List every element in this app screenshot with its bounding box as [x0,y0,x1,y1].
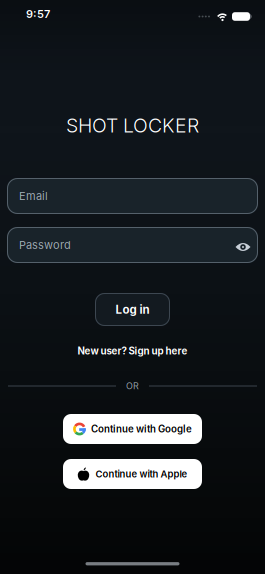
staticText: Continue with Apple [95,468,187,480]
button[interactable]: Email [0,178,265,214]
staticText: Log in [115,302,149,316]
staticText: New user? Sign up here [77,345,187,357]
staticText: Email [19,189,48,203]
button[interactable]: Continue with Google [63,414,202,444]
staticText: Continue with Google [91,423,192,435]
staticText: 9:57 [26,7,50,21]
staticText: OR [126,381,139,391]
button[interactable]: New user? Sign up here [77,345,187,357]
staticText: Password [19,238,71,252]
staticText: SHOT LOCKER [66,114,199,137]
button[interactable]: Password [0,227,265,263]
button[interactable]: Continue with Apple [63,459,202,489]
button[interactable]: Log in [95,293,170,326]
